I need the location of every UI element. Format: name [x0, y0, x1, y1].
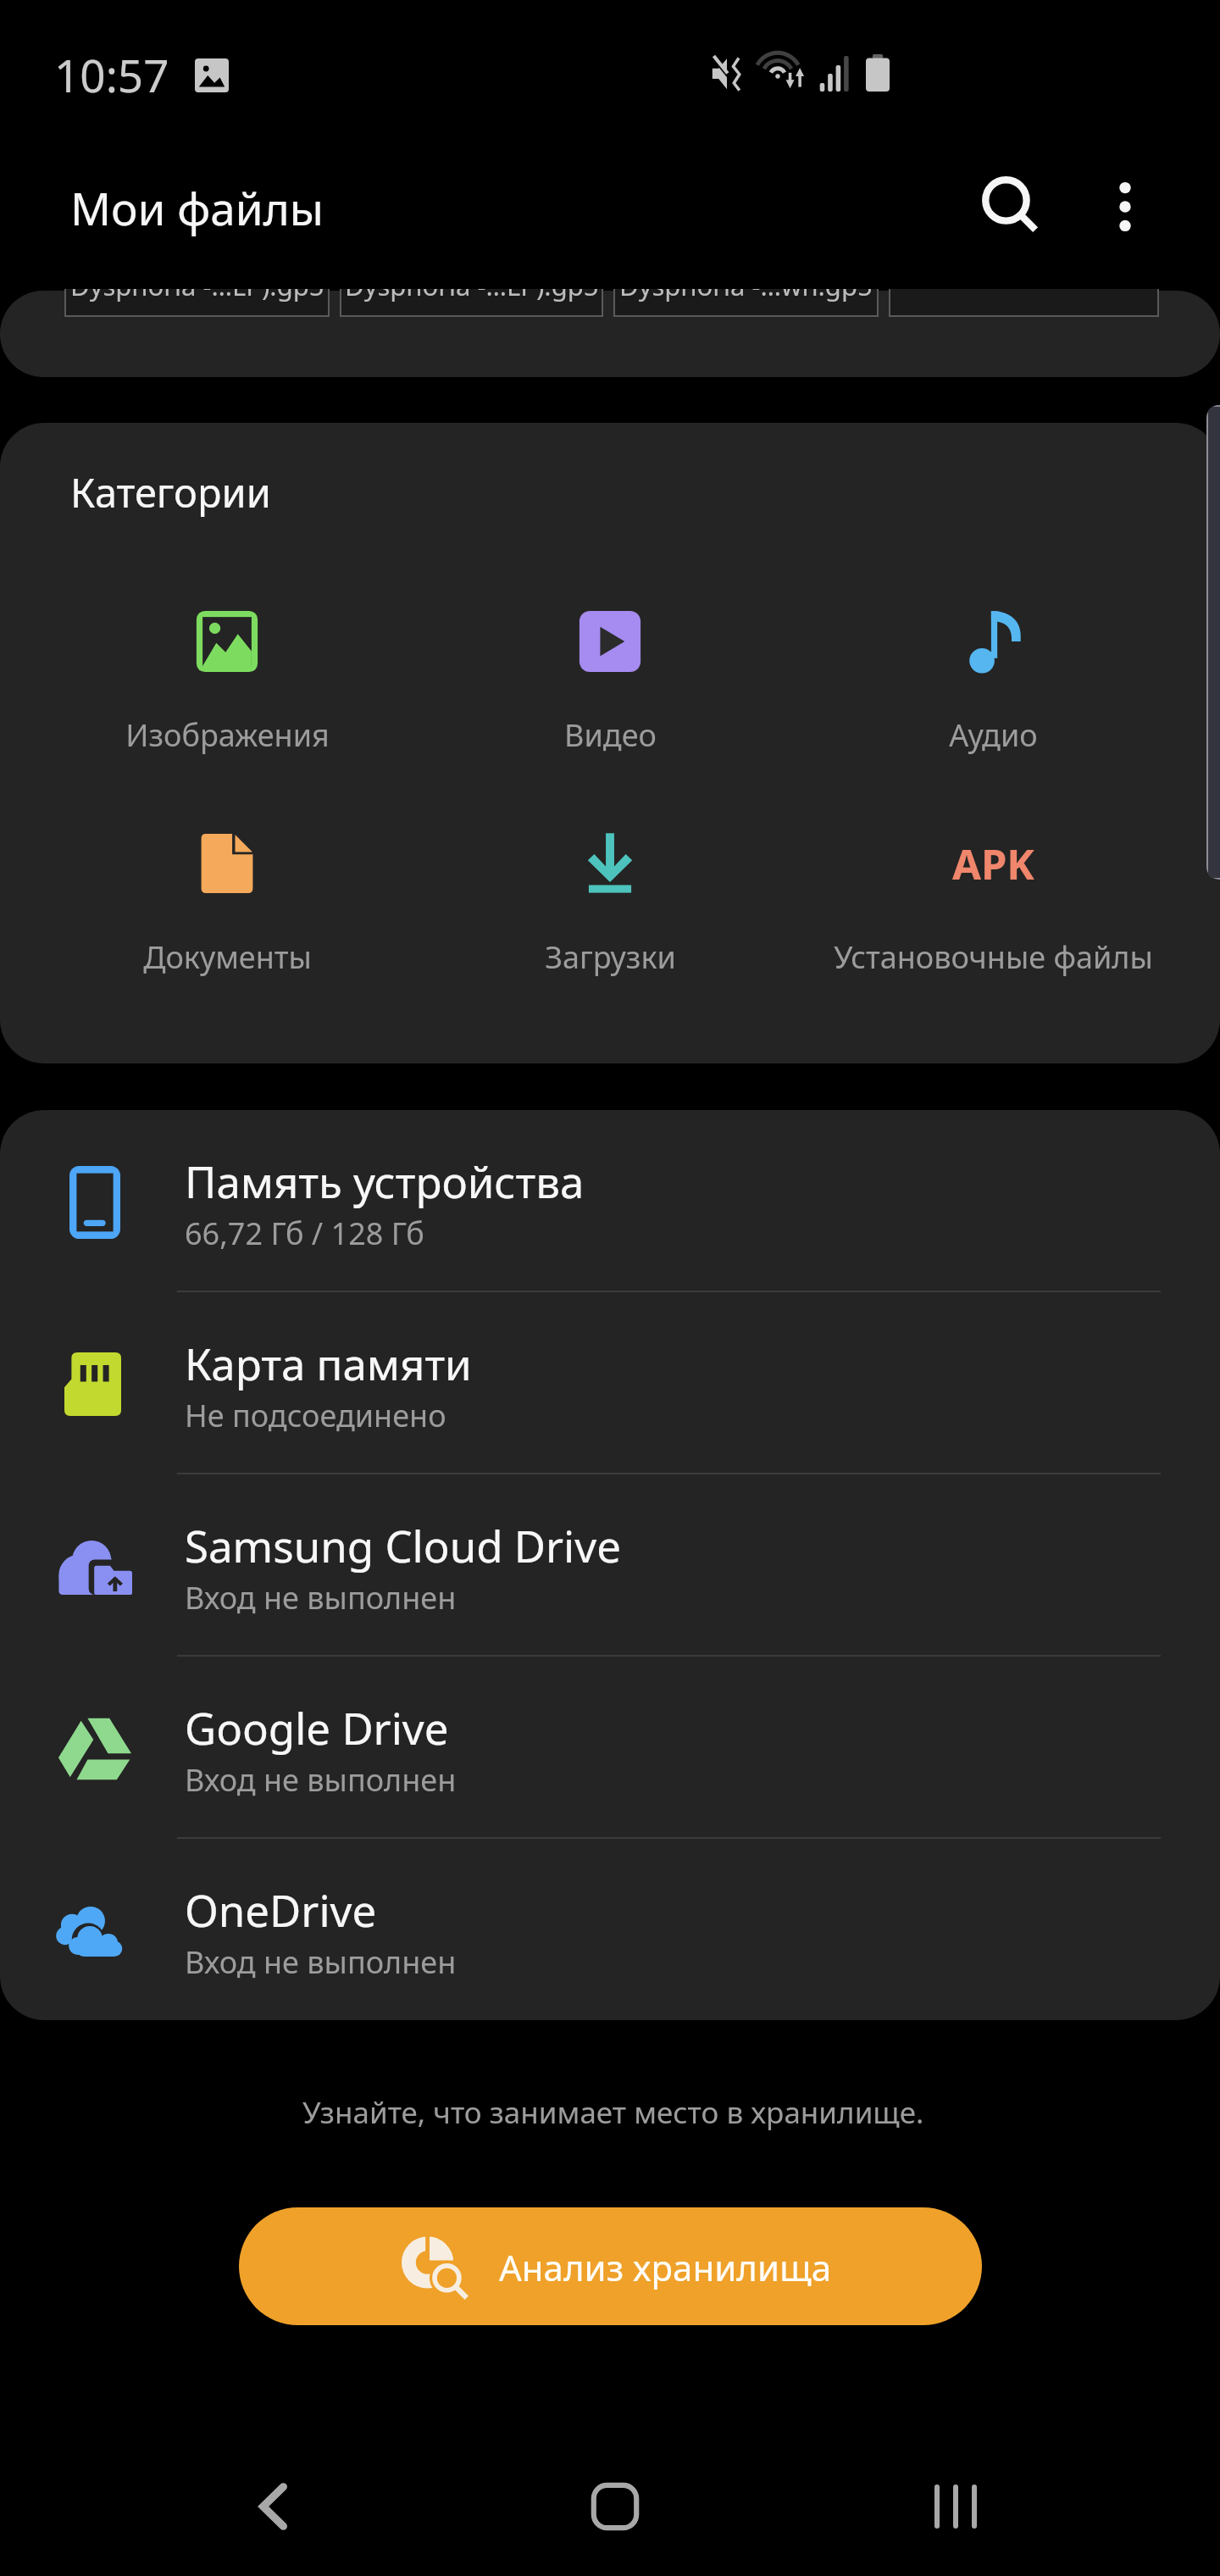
staticText: Мои файлы	[70, 177, 324, 238]
staticText: Категории	[70, 465, 271, 519]
button[interactable]: Home	[556, 2447, 674, 2566]
staticText: Загрузки	[545, 936, 676, 978]
staticText: Анализ хранилища	[499, 2243, 832, 2291]
staticText: Документы	[143, 936, 312, 978]
staticText: Установочные файлы	[834, 936, 1153, 978]
staticText: Видео	[564, 714, 657, 756]
staticText: Dysphoria -…wn.gp5	[619, 268, 873, 303]
staticText: Samsung Cloud Drive	[185, 1516, 621, 1574]
staticText: Google Drive	[185, 1698, 449, 1757]
button[interactable]: Карта памяти	[0, 1292, 1220, 1474]
staticText: 10:57	[54, 44, 169, 105]
staticText: APK	[952, 836, 1034, 892]
button[interactable]: Память устройства	[0, 1110, 1220, 1292]
staticText: Карта памяти	[185, 1334, 472, 1392]
staticText: Вход не выполнен	[185, 1941, 457, 1983]
button[interactable]: Recent apps	[896, 2447, 1015, 2566]
staticText: Память устройства	[185, 1152, 585, 1210]
staticText: Аудио	[949, 714, 1038, 756]
button[interactable]: Back	[213, 2447, 332, 2566]
staticText: Вход не выполнен	[185, 1759, 457, 1801]
staticText: Dysphoria -…LP).gp5	[345, 268, 599, 303]
button[interactable]: Изображения	[36, 586, 419, 772]
staticText: Узнайте, что занимает место в хранилище.	[302, 2092, 924, 2133]
button[interactable]: Search	[951, 146, 1070, 264]
staticText: OneDrive	[185, 1880, 377, 1939]
button[interactable]: OneDrive	[0, 1839, 1220, 2020]
button[interactable]: Документы	[36, 808, 419, 994]
staticText: Вход не выполнен	[185, 1577, 457, 1618]
button[interactable]: APK	[801, 808, 1184, 994]
button[interactable]: Загрузки	[419, 808, 801, 994]
button[interactable]: Google Drive	[0, 1657, 1220, 1839]
button[interactable]: Анализ хранилища	[239, 2207, 982, 2325]
button[interactable]: More options	[1066, 147, 1184, 266]
button[interactable]: Samsung Cloud Drive	[0, 1474, 1220, 1657]
staticText: Не подсоединено	[185, 1395, 446, 1436]
staticText: Dysphoria -…LP).gp5	[70, 268, 324, 303]
button[interactable]: Аудио	[801, 586, 1184, 772]
button[interactable]: Видео	[419, 586, 801, 772]
button[interactable]	[0, 291, 1220, 377]
staticText: Изображения	[125, 714, 330, 756]
staticText: 66,72 Гб / 128 Гб	[185, 1213, 424, 1254]
